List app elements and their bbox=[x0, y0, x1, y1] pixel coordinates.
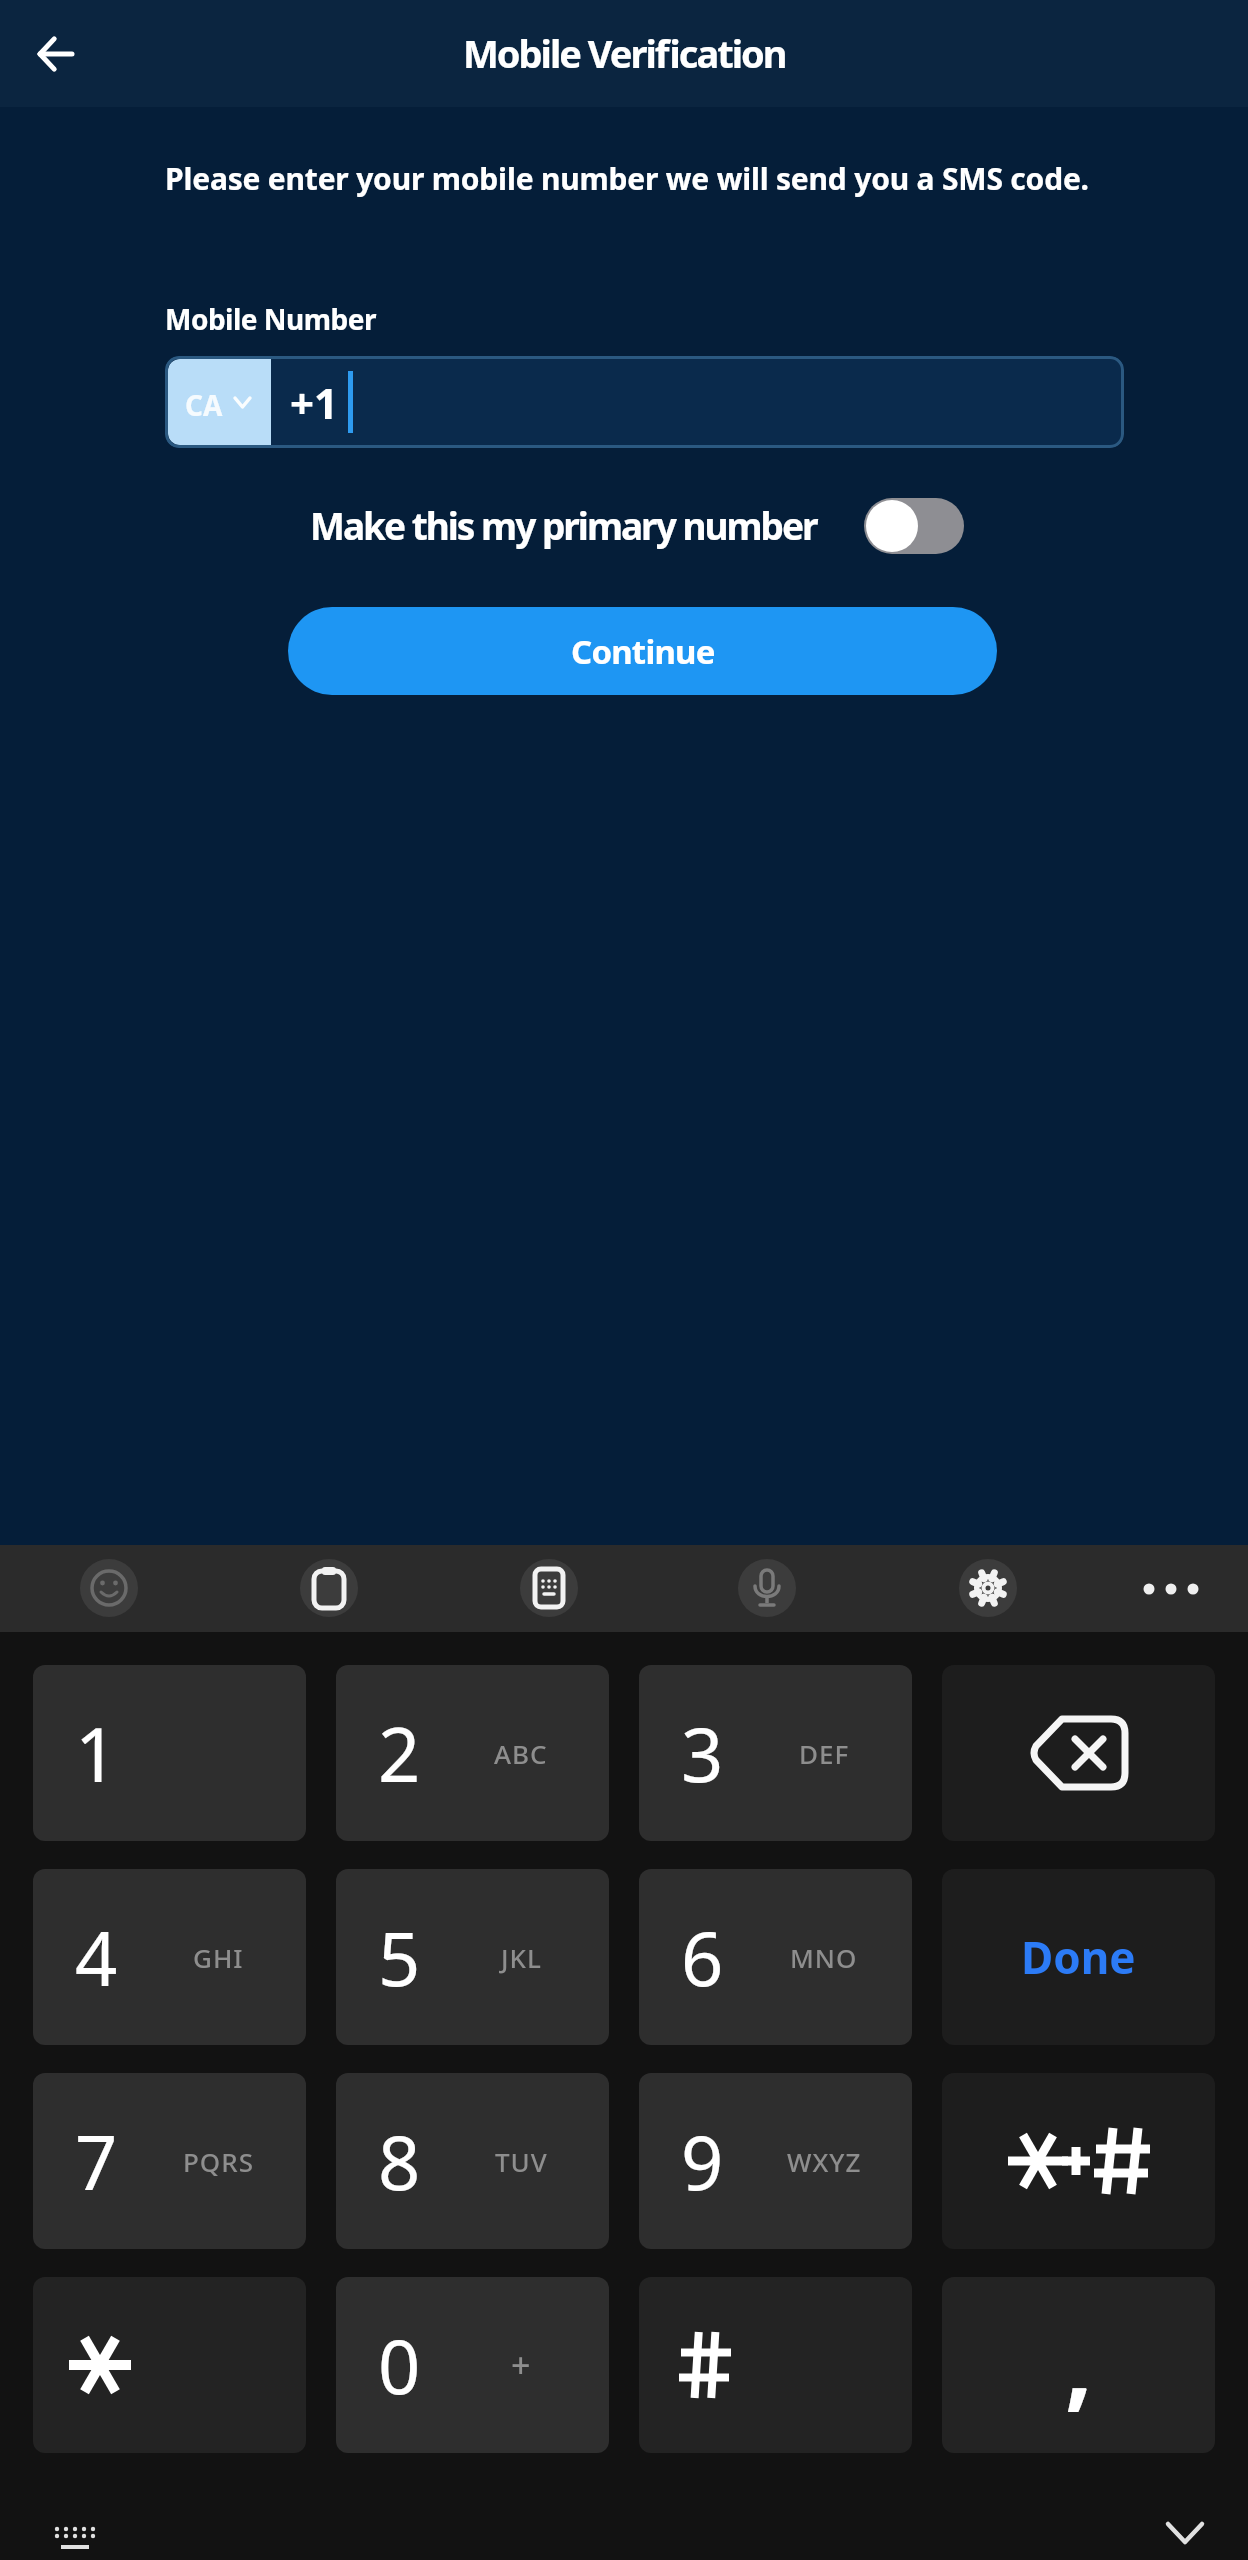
button[interactable] bbox=[520, 1559, 578, 1617]
button[interactable]: 1 bbox=[33, 1665, 306, 1841]
staticText: + bbox=[511, 2342, 532, 2388]
staticText: Please enter your mobile number we will … bbox=[165, 158, 1089, 199]
button[interactable]: 4 bbox=[33, 1869, 306, 2045]
staticText: 4 bbox=[75, 1907, 118, 2008]
staticText: TUV bbox=[495, 2144, 548, 2179]
button[interactable]: CA bbox=[165, 356, 1124, 448]
button[interactable] bbox=[300, 1559, 358, 1617]
staticText: MNO bbox=[790, 1940, 858, 1975]
staticText: 7 bbox=[75, 2111, 118, 2212]
button[interactable]: 5 bbox=[336, 1869, 609, 2045]
button[interactable] bbox=[24, 22, 88, 86]
button[interactable] bbox=[80, 1559, 138, 1617]
staticText: PQRS bbox=[183, 2144, 254, 2179]
button[interactable] bbox=[1140, 2505, 1230, 2560]
staticText: Continue bbox=[571, 629, 715, 674]
staticText: WXYZ bbox=[787, 2144, 862, 2179]
button[interactable]: Done bbox=[942, 1869, 1215, 2045]
button[interactable] bbox=[738, 1559, 796, 1617]
staticText: 1 bbox=[75, 1703, 118, 1804]
button[interactable]: Continue bbox=[288, 607, 997, 695]
button[interactable] bbox=[942, 2073, 1215, 2249]
button[interactable] bbox=[639, 2277, 912, 2453]
staticText: Mobile Verification bbox=[463, 27, 786, 79]
button[interactable]: 7 bbox=[33, 2073, 306, 2249]
button[interactable] bbox=[33, 2277, 306, 2453]
button[interactable] bbox=[864, 498, 964, 554]
button[interactable]: CA bbox=[168, 359, 271, 445]
button[interactable]: 6 bbox=[639, 1869, 912, 2045]
staticText: 9 bbox=[681, 2111, 724, 2212]
button[interactable]: 9 bbox=[639, 2073, 912, 2249]
staticText: 3 bbox=[681, 1703, 724, 1804]
staticText: , bbox=[1065, 2296, 1093, 2427]
button[interactable] bbox=[959, 1559, 1017, 1617]
staticText: 8 bbox=[378, 2111, 421, 2212]
button[interactable] bbox=[40, 2515, 110, 2560]
staticText: Done bbox=[1021, 1927, 1136, 1987]
staticText: 6 bbox=[681, 1907, 724, 2008]
button[interactable]: 8 bbox=[336, 2073, 609, 2249]
staticText: +1 bbox=[290, 374, 339, 431]
staticText: CA bbox=[185, 386, 223, 424]
staticText: GHI bbox=[193, 1940, 244, 1975]
staticText: 0 bbox=[378, 2315, 421, 2416]
staticText: ABC bbox=[494, 1736, 548, 1771]
button[interactable]: 2 bbox=[336, 1665, 609, 1841]
staticText: JKL bbox=[501, 1940, 542, 1975]
button[interactable] bbox=[1127, 1545, 1215, 1632]
staticText: Make this my primary number bbox=[310, 500, 817, 550]
button[interactable]: , bbox=[942, 2277, 1215, 2453]
staticText: Mobile Number bbox=[165, 300, 377, 338]
button[interactable] bbox=[942, 1665, 1215, 1841]
staticText: 2 bbox=[378, 1703, 421, 1804]
staticText: DEF bbox=[799, 1736, 850, 1771]
staticText: 5 bbox=[378, 1907, 421, 2008]
button[interactable]: 3 bbox=[639, 1665, 912, 1841]
button[interactable]: 0 bbox=[336, 2277, 609, 2453]
button[interactable]: Make this my primary number bbox=[305, 490, 965, 560]
